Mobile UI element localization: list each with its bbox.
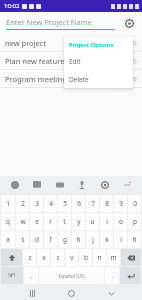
staticText: c (56, 253, 60, 262)
staticText: Program meeting (5, 74, 126, 84)
button[interactable]: e (30, 213, 43, 230)
button[interactable]: Voice input (74, 177, 90, 193)
button[interactable]: c (51, 249, 64, 266)
button[interactable]: k (100, 231, 113, 248)
button[interactable]: a (1, 231, 15, 248)
staticText: Plan new feature (5, 56, 126, 66)
staticText: l (120, 235, 122, 244)
button[interactable]: t (58, 213, 71, 230)
button[interactable]: x (37, 249, 50, 266)
button[interactable]: Home (63, 286, 79, 300)
button[interactable]: More options (119, 177, 135, 193)
staticText: !#1 (8, 272, 16, 279)
staticText: m (110, 253, 117, 262)
staticText: (0/3) (126, 58, 137, 65)
staticText: q (6, 217, 10, 226)
button[interactable]: 1 (1, 195, 15, 212)
button[interactable]: 2 (16, 195, 29, 212)
staticText: u (90, 217, 95, 226)
staticText: w (20, 217, 26, 226)
button[interactable]: Settings (123, 17, 136, 30)
button[interactable]: u (86, 213, 99, 230)
button[interactable]: Enter (120, 267, 141, 284)
button[interactable]: !#1 (1, 267, 23, 284)
button[interactable]: Shift (1, 249, 22, 266)
button[interactable]: 0 (128, 195, 141, 212)
staticText: . (111, 271, 113, 280)
staticText: 8 (105, 199, 109, 208)
button[interactable]: g (58, 231, 71, 248)
button[interactable]: j (86, 231, 99, 248)
button[interactable]: b (79, 249, 92, 266)
staticText: y (77, 217, 81, 226)
button[interactable]: 8 (100, 195, 113, 212)
button[interactable]: Español (US) (39, 267, 104, 284)
button[interactable]: Program meeting (0, 70, 142, 88)
staticText: 4 (49, 199, 53, 208)
staticText: a (6, 235, 10, 244)
button[interactable]: 7 (86, 195, 99, 212)
button[interactable]: Emoji (7, 177, 23, 193)
staticText: 5 (63, 199, 67, 208)
button[interactable]: m (107, 249, 120, 266)
staticText: r (49, 217, 52, 226)
staticText: (0/3) (126, 76, 137, 83)
button[interactable]: Back (103, 286, 119, 300)
button[interactable]: 6 (72, 195, 85, 212)
button[interactable]: z (23, 249, 36, 266)
button[interactable]: 3 (30, 195, 43, 212)
staticText: new project (5, 38, 126, 48)
button[interactable]: new project (0, 34, 142, 52)
button[interactable]: q (1, 213, 15, 230)
button[interactable]: Backspace (121, 249, 141, 266)
button[interactable]: Edit (69, 57, 128, 66)
staticText: 7 (91, 199, 95, 208)
button[interactable]: f (44, 231, 57, 248)
button[interactable]: o (114, 213, 127, 230)
staticText: Enter New Project Name (6, 17, 93, 27)
button[interactable]: w (16, 213, 29, 230)
staticText: 9 (119, 199, 123, 208)
button[interactable]: . (105, 267, 119, 284)
button[interactable]: Recent apps (24, 286, 40, 300)
staticText: p (133, 217, 137, 226)
staticText: 6 (77, 199, 81, 208)
button[interactable]: ñ (128, 231, 141, 248)
button[interactable]: Clipboard (52, 177, 68, 193)
button[interactable]: n (93, 249, 106, 266)
staticText: i (106, 217, 108, 226)
staticText: f (49, 235, 52, 244)
button[interactable]: d (30, 231, 43, 248)
button[interactable]: 5 (58, 195, 71, 212)
staticText: Edit (69, 57, 81, 66)
staticText: d (35, 235, 39, 244)
staticText: 3 (35, 199, 39, 208)
staticText: x (42, 253, 46, 262)
staticText: n (97, 253, 102, 262)
button[interactable]: Keyboard settings (97, 177, 113, 193)
button[interactable]: , (24, 267, 38, 284)
staticText: s (21, 235, 25, 244)
button[interactable]: Delete (69, 75, 128, 84)
button[interactable]: y (72, 213, 85, 230)
staticText: b (84, 253, 88, 262)
button[interactable]: 4 (44, 195, 57, 212)
button[interactable]: Stickers (29, 177, 45, 193)
staticText: ñ (132, 235, 137, 244)
staticText: g (63, 235, 67, 244)
button[interactable]: h (72, 231, 85, 248)
staticText: , (30, 271, 32, 280)
button[interactable]: i (100, 213, 113, 230)
staticText: o (119, 217, 123, 226)
button[interactable]: v (65, 249, 78, 266)
staticText: v (70, 253, 74, 262)
staticText: 1 (6, 199, 10, 208)
button[interactable]: l (114, 231, 127, 248)
button[interactable]: Plan new feature (0, 52, 142, 70)
button[interactable]: Enter New Project Name (6, 17, 115, 30)
staticText: 2 (21, 199, 25, 208)
button[interactable]: 9 (114, 195, 127, 212)
button[interactable]: r (44, 213, 57, 230)
button[interactable]: p (128, 213, 141, 230)
button[interactable]: s (16, 231, 29, 248)
